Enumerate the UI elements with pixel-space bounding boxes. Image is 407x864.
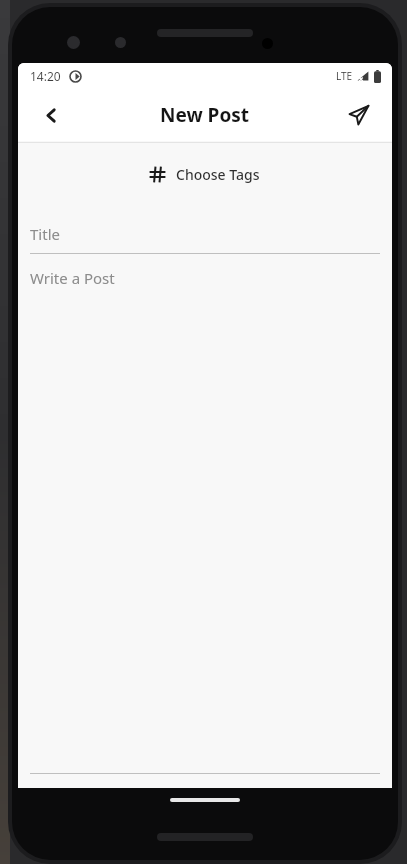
staticText: Choose Tags (176, 165, 260, 184)
button[interactable]: Send post (340, 96, 378, 134)
staticText: 14:20 (30, 68, 61, 84)
staticText: LTE (336, 69, 353, 83)
button[interactable]: Choose Tags (142, 161, 268, 188)
staticText: Write a Post (30, 268, 115, 288)
staticText: New Post (160, 102, 250, 128)
button[interactable]: Title (18, 215, 392, 253)
staticText: Title (30, 224, 60, 244)
button[interactable]: Write a Post (18, 254, 392, 788)
button[interactable]: Back (32, 96, 70, 134)
